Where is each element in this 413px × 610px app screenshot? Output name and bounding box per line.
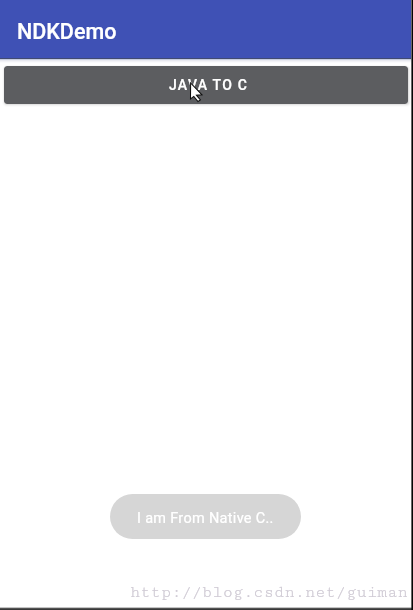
staticText: I am From Native C.. xyxy=(137,510,274,527)
button[interactable]: JAVA TO C xyxy=(4,66,408,104)
staticText: http://blog.csdn.net/guiman xyxy=(130,583,408,602)
staticText: NDKDemo xyxy=(17,19,117,44)
staticText: JAVA TO C xyxy=(169,77,249,93)
